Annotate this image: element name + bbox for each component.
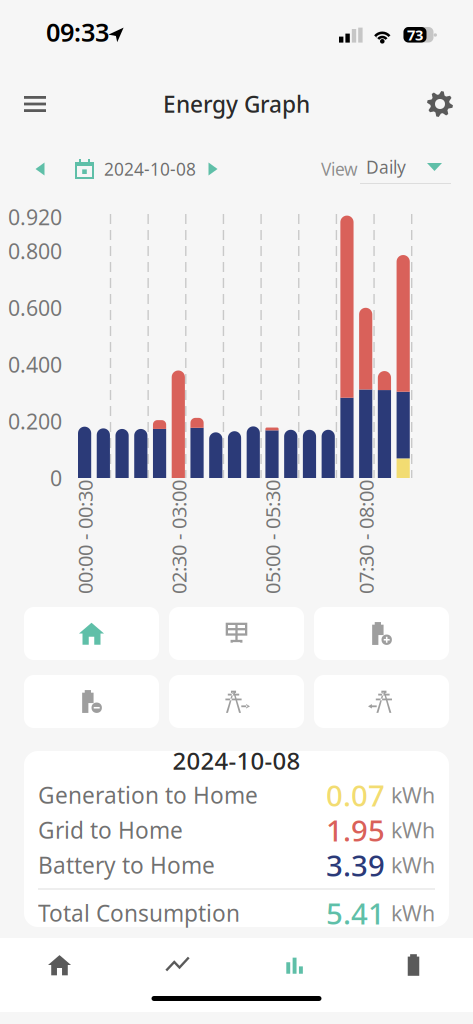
staticText: Total Consumption (38, 898, 240, 928)
staticText: 02:30 - 03:00 (119, 521, 233, 547)
staticText: 3.39 (326, 845, 385, 884)
button[interactable]: Daily (360, 151, 451, 184)
staticText: View (321, 157, 358, 180)
staticText: 0.200 (8, 407, 62, 435)
staticText: 0.400 (8, 350, 62, 379)
staticText: 0 (50, 464, 62, 492)
button[interactable]: Trends (118, 940, 236, 990)
staticText: kWh (385, 816, 435, 844)
staticText: Daily (366, 155, 406, 178)
staticText: kWh (385, 899, 435, 927)
button[interactable]: Menu (12, 82, 58, 126)
button[interactable] (24, 675, 159, 728)
button[interactable]: Graph (236, 940, 354, 990)
button[interactable]: Battery (354, 940, 472, 990)
staticText: 0.600 (8, 294, 62, 322)
button[interactable]: Settings (417, 82, 463, 126)
button[interactable] (169, 607, 304, 660)
staticText: 73 (407, 25, 423, 44)
staticText: 0.07 (326, 775, 385, 814)
staticText: Grid to Home (38, 815, 183, 845)
staticText: Generation to Home (38, 780, 258, 810)
button[interactable]: Home (0, 940, 118, 990)
button[interactable] (314, 607, 449, 660)
staticText: Battery to Home (38, 850, 215, 880)
staticText: 0.800 (8, 237, 62, 265)
staticText: kWh (385, 781, 435, 809)
staticText: 09:33 (46, 15, 109, 49)
staticText: Energy Graph (163, 89, 310, 119)
staticText: 1.95 (326, 810, 385, 849)
staticText: 05:00 - 05:30 (212, 521, 326, 547)
staticText: 07:30 - 08:00 (306, 521, 420, 547)
button[interactable] (169, 675, 304, 728)
button[interactable]: Next day (196, 149, 230, 189)
button[interactable] (314, 675, 449, 728)
staticText: 2024-10-08 (172, 745, 300, 776)
staticText: kWh (385, 851, 435, 879)
button[interactable]: Previous day (23, 149, 57, 189)
button[interactable] (24, 607, 159, 660)
staticText: 5.41 (326, 893, 385, 932)
staticText: 2024-10-08 (104, 157, 196, 180)
staticText: 0.920 (8, 203, 62, 231)
staticText: 00:00 - 00:30 (25, 521, 139, 547)
button[interactable]: 2024-10-08 (67, 149, 204, 189)
